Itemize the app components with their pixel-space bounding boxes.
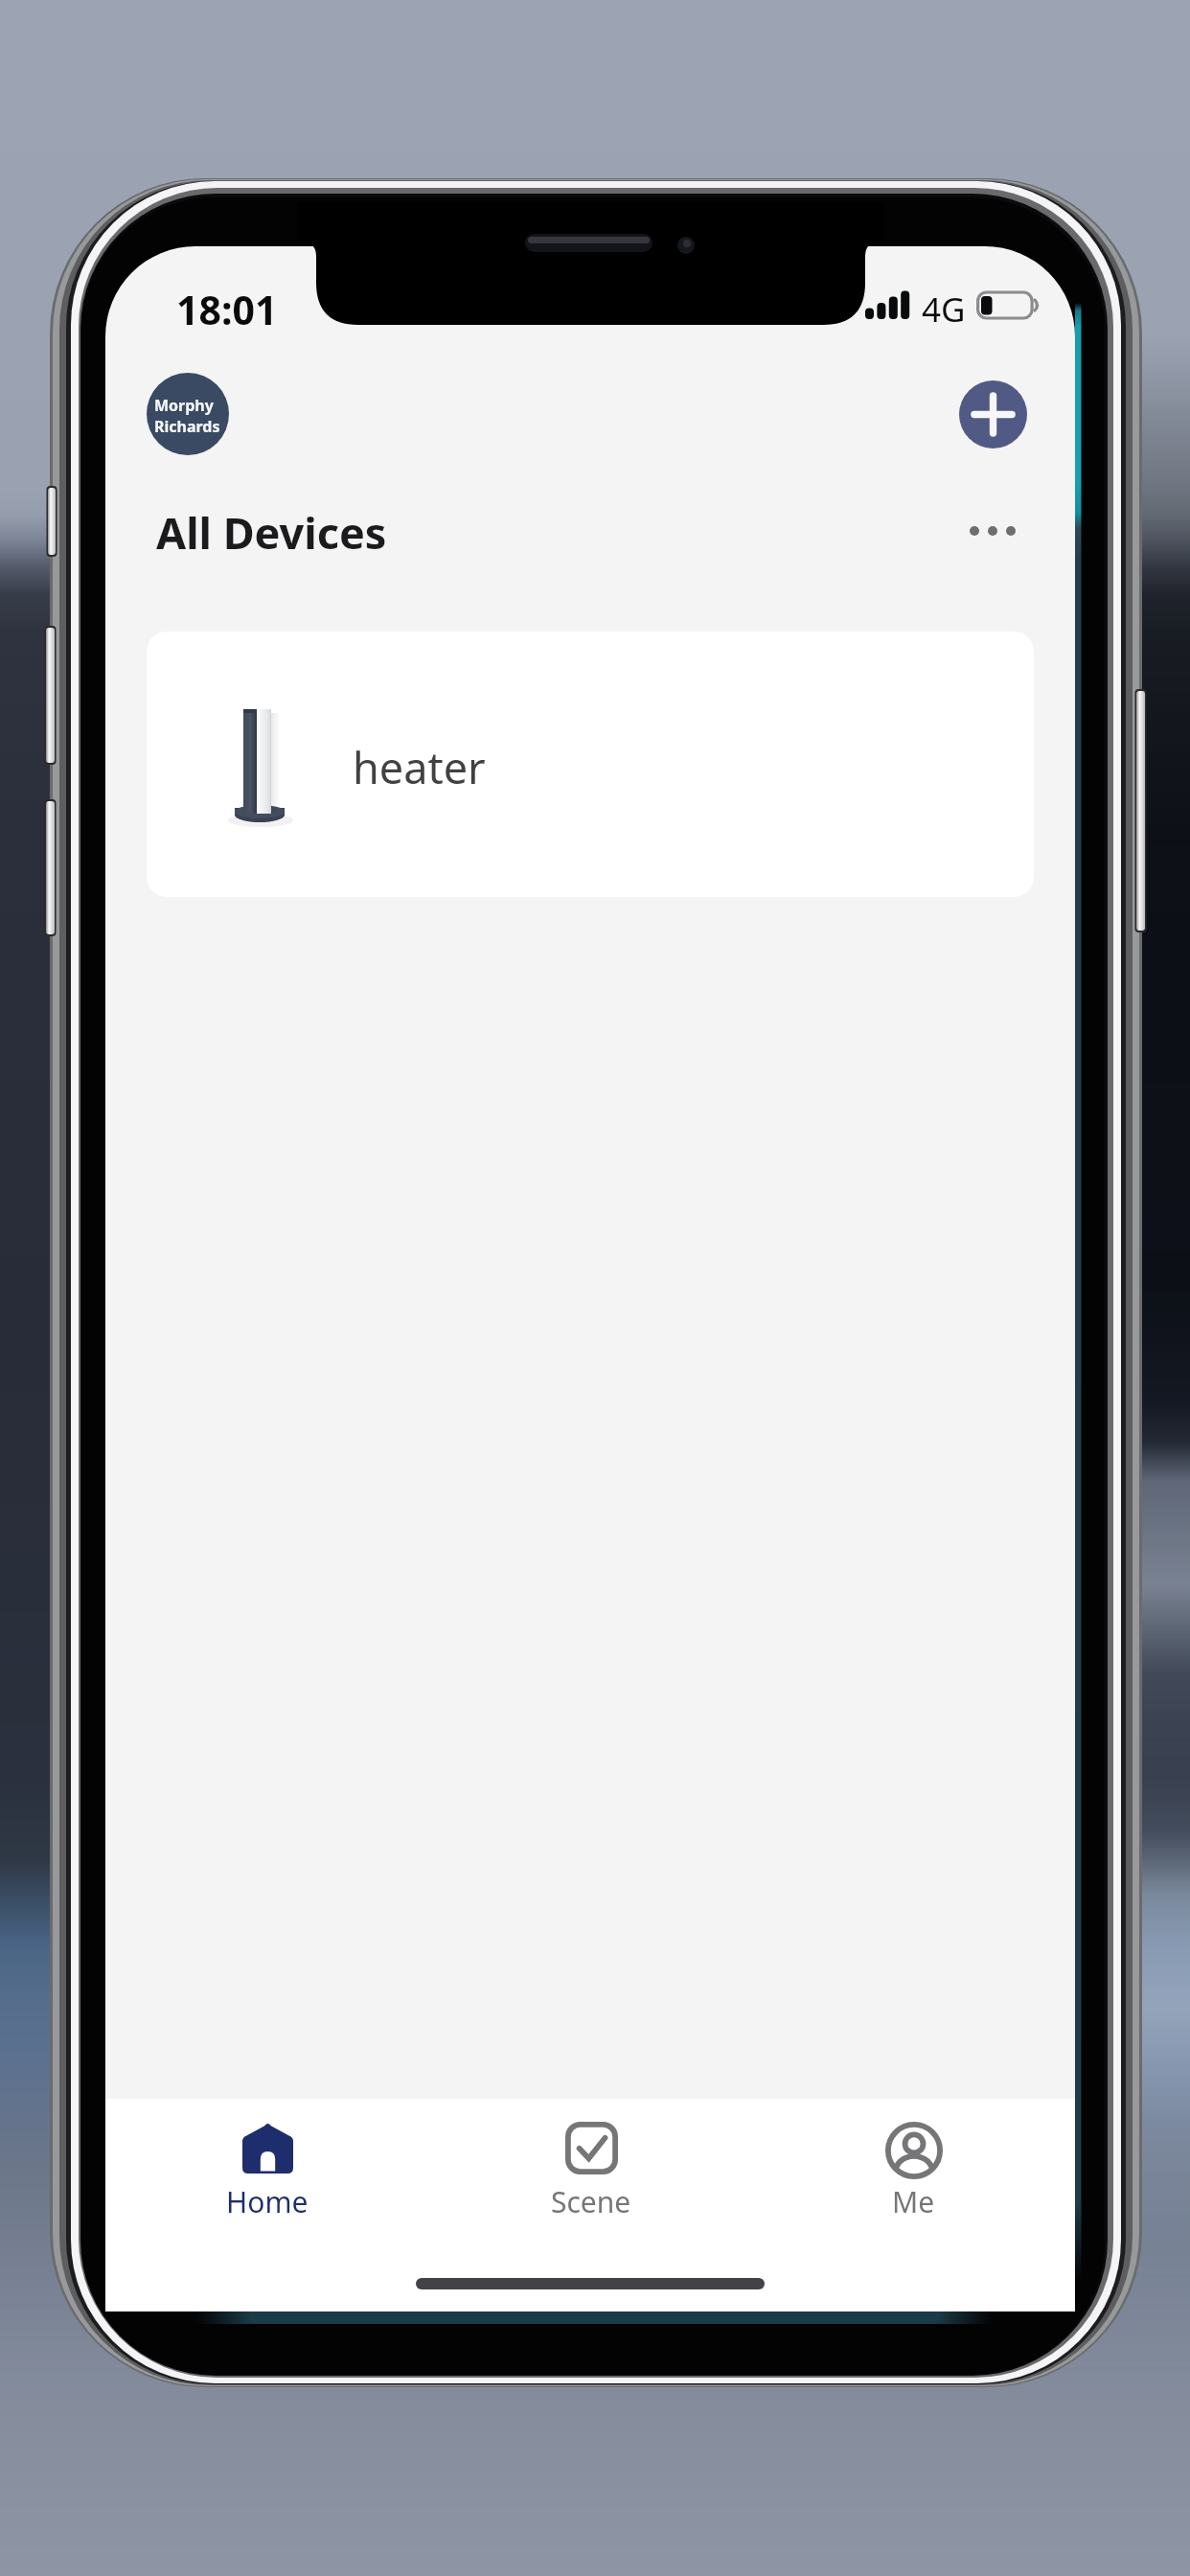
button[interactable]: Add device	[959, 380, 1027, 448]
button[interactable]: More options	[952, 491, 1033, 571]
staticText: 4G	[922, 287, 966, 333]
button[interactable]: Morphy Richards home	[147, 373, 229, 455]
staticText: Richards	[154, 416, 220, 437]
button[interactable]: Home	[105, 2099, 429, 2221]
staticText: 18:01	[176, 283, 278, 336]
staticText: Me	[892, 2182, 935, 2221]
staticText: Home	[226, 2182, 309, 2221]
staticText: Morphy	[154, 395, 214, 416]
staticText: Scene	[551, 2182, 631, 2221]
button[interactable]: heater	[147, 632, 1034, 897]
button[interactable]: Scene	[429, 2099, 752, 2221]
staticText: heater	[353, 738, 486, 796]
button[interactable]: Me	[752, 2099, 1075, 2221]
staticText: All Devices	[156, 503, 387, 562]
